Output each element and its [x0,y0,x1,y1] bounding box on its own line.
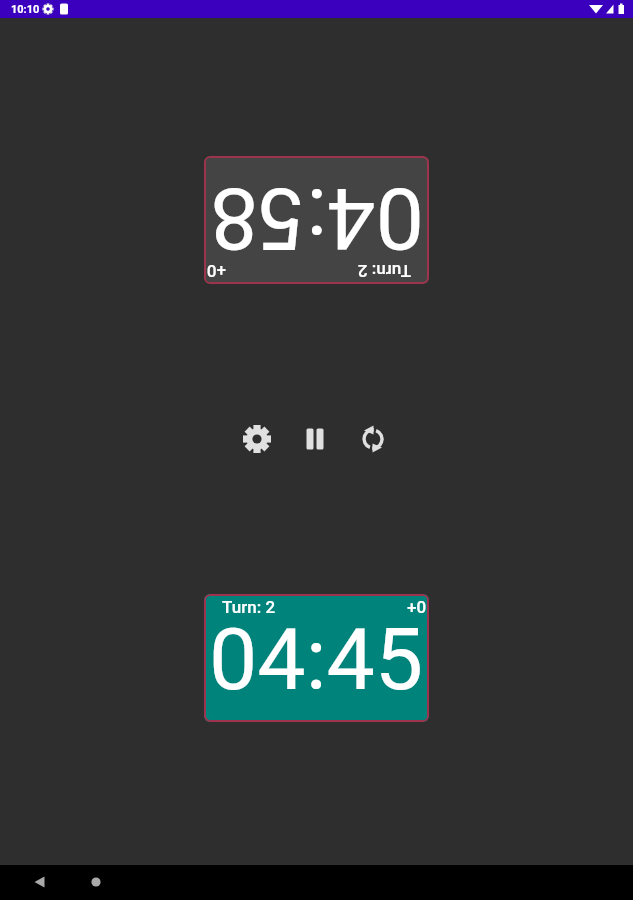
staticText: 10:10 [11,3,40,16]
staticText: +0 [206,261,226,281]
button[interactable] [27,869,53,895]
staticText: Turn: 2 [222,597,276,617]
button[interactable] [242,424,272,454]
button[interactable]: Turn: 2 [204,594,429,722]
staticText: +0 [407,597,427,617]
button[interactable] [358,424,388,454]
staticText: 04:58 [209,168,424,269]
staticText: Turn: 2 [357,261,411,281]
button[interactable] [83,869,109,895]
button[interactable] [300,424,330,454]
button[interactable]: Turn: 2 [204,156,429,284]
staticText: 04:45 [209,609,424,710]
